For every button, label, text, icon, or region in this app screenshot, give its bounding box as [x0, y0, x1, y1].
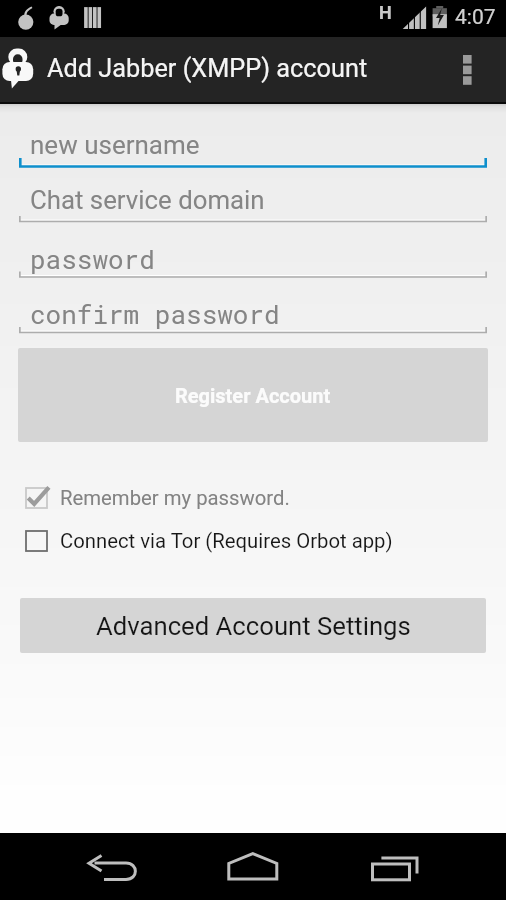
staticText: Connect via Tor (Requires Orbot app): [60, 529, 393, 553]
staticText: password: [30, 242, 155, 276]
staticText: Advanced Account Settings: [96, 611, 411, 641]
button[interactable]: Back: [0, 833, 168, 900]
button[interactable]: Advanced Account Settings: [20, 598, 486, 653]
staticText: new username: [30, 130, 200, 160]
staticText: H: [379, 2, 392, 23]
button[interactable]: text field 1: [19, 119, 487, 169]
button[interactable]: text field 4: [19, 285, 487, 335]
staticText: 4:07: [455, 5, 496, 30]
staticText: confirm password: [30, 297, 280, 331]
staticText: Register Account: [175, 384, 331, 407]
button[interactable]: Register Account: [18, 348, 488, 442]
button[interactable]: Connect via Tor (Requires Orbot app): [25, 526, 393, 556]
button[interactable]: text field 2: [19, 174, 487, 224]
staticText: Add Jabber (XMPP) account: [47, 54, 368, 84]
staticText: Remember my password.: [60, 486, 290, 510]
button[interactable]: Recent apps: [337, 833, 506, 900]
button[interactable]: Home: [168, 833, 337, 900]
button[interactable]: Remember my password.: [25, 483, 290, 513]
button[interactable]: text field 3: [19, 229, 487, 279]
staticText: Chat service domain: [30, 185, 265, 215]
button[interactable]: More options: [438, 37, 496, 102]
